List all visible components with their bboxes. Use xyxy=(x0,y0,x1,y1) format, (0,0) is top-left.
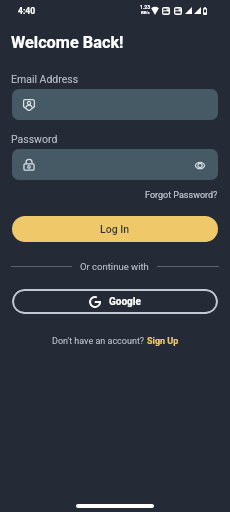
staticText: Log In xyxy=(100,223,130,235)
staticText: Don't have an account? xyxy=(52,336,147,347)
staticText: Password xyxy=(11,133,58,145)
staticText: Welcome Back! xyxy=(11,33,124,52)
button[interactable]: Sign Up xyxy=(147,336,179,347)
button[interactable]: Google xyxy=(12,289,218,314)
button[interactable]: Password input xyxy=(12,149,218,180)
button[interactable]: Forgot Password? xyxy=(143,188,220,203)
staticText: Forgot Password? xyxy=(145,190,218,201)
staticText: Google xyxy=(109,296,141,308)
staticText: Sign Up xyxy=(147,336,179,347)
staticText: Or continue with xyxy=(80,261,149,272)
button[interactable]: Show password xyxy=(189,154,211,176)
staticText: 4:40 xyxy=(18,6,36,16)
staticText: 1.23 xyxy=(140,4,151,10)
button[interactable]: Email Address input xyxy=(12,89,218,120)
button[interactable]: Log In xyxy=(12,216,218,242)
staticText: Email Address xyxy=(11,73,79,85)
staticText: KB/s xyxy=(141,10,150,15)
